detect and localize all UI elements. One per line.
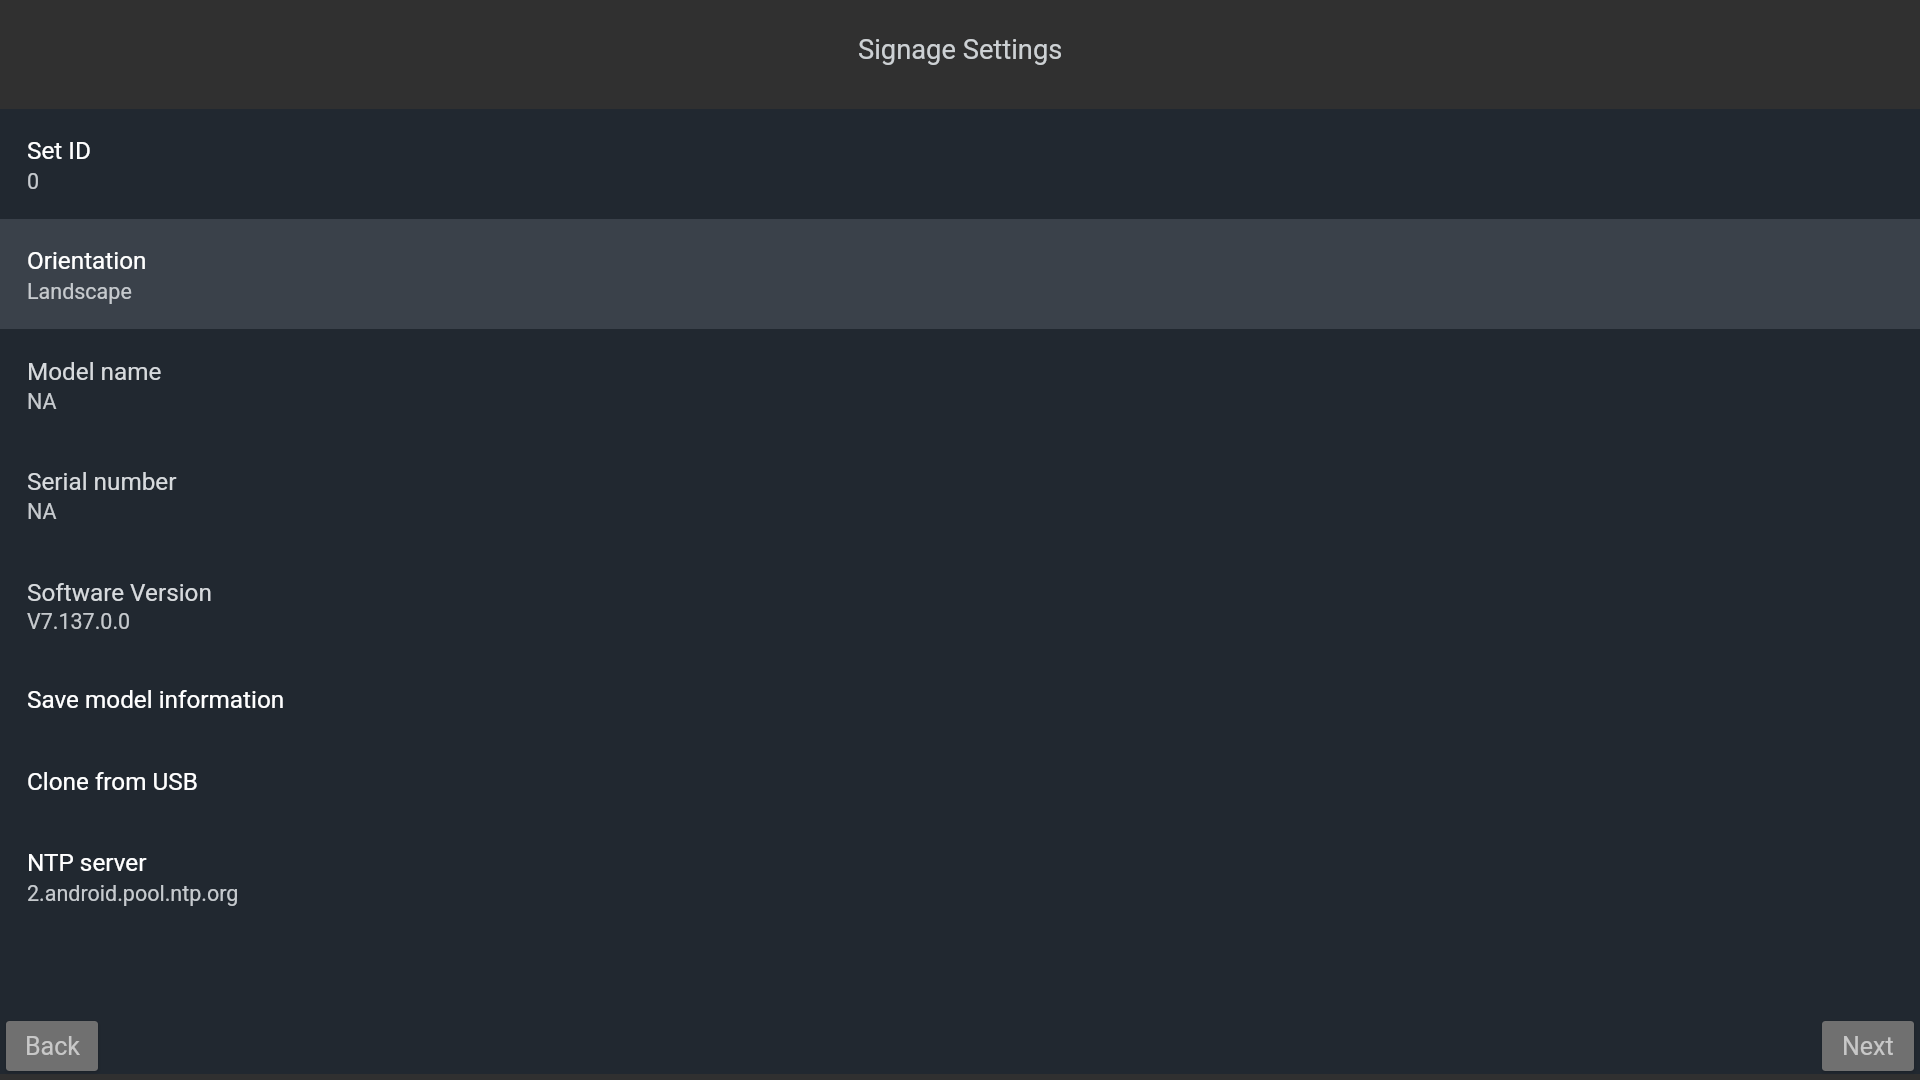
staticText: 2.android.pool.ntp.org	[27, 881, 239, 906]
staticText: Set ID	[27, 136, 91, 164]
button[interactable]: Set ID	[0, 109, 1920, 219]
staticText: V7.137.0.0	[27, 609, 131, 634]
staticText: Next	[1842, 1032, 1894, 1061]
staticText: Clone from USB	[27, 767, 198, 795]
staticText: NTP server	[27, 848, 147, 876]
staticText: 0	[27, 169, 40, 194]
staticText: Orientation	[27, 246, 147, 274]
staticText: Landscape	[27, 279, 132, 304]
staticText: Software Version	[27, 578, 212, 606]
button[interactable]: Save model information	[0, 659, 1920, 742]
button[interactable]: Next	[1822, 1021, 1914, 1071]
staticText: Serial number	[27, 467, 177, 495]
button[interactable]: Model name	[0, 329, 1920, 439]
button[interactable]: Orientation	[0, 219, 1920, 329]
staticText: Signage Settings	[858, 34, 1063, 66]
button[interactable]: Clone from USB	[0, 742, 1920, 824]
staticText: Model name	[27, 357, 162, 385]
staticText: Save model information	[27, 685, 285, 713]
staticText: NA	[27, 389, 57, 414]
button[interactable]: Back	[6, 1021, 98, 1071]
button[interactable]: Serial number	[0, 439, 1920, 549]
button[interactable]: Software Version	[0, 549, 1920, 659]
staticText: NA	[27, 499, 57, 524]
staticText: Back	[25, 1032, 80, 1061]
button[interactable]: NTP server	[0, 824, 1920, 934]
